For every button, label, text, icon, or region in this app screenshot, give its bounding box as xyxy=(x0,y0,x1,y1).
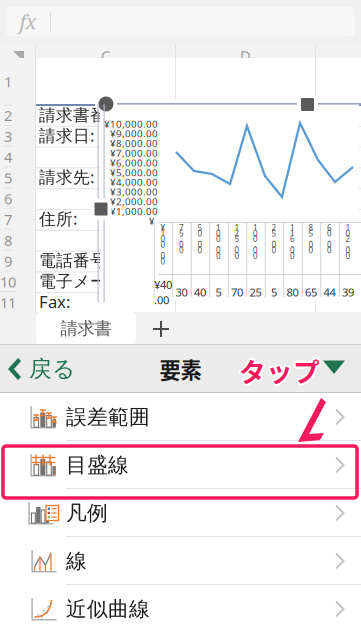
staticText: 6 xyxy=(290,234,295,244)
staticText: 8 xyxy=(4,230,12,250)
staticText: 0 xyxy=(197,239,202,250)
staticText: . xyxy=(310,234,312,244)
staticText: 凡例 xyxy=(66,500,108,526)
staticText: ¥9,000.00 xyxy=(110,127,158,140)
staticText: 40 xyxy=(194,285,206,300)
staticText: 1 xyxy=(345,222,350,233)
staticText: 0 xyxy=(253,250,258,261)
staticText: ¥4,000.00 xyxy=(110,175,158,189)
staticText: 65 xyxy=(305,285,317,300)
staticText: 0 xyxy=(253,245,258,256)
staticText: 2 xyxy=(345,234,350,244)
staticText: ¥2,000.00 xyxy=(110,195,158,208)
staticText: 9 xyxy=(4,251,12,271)
button[interactable]: 近似曲線 xyxy=(0,585,361,633)
staticText: タップ xyxy=(241,353,322,391)
staticText: . xyxy=(347,239,349,250)
staticText: 請求先: xyxy=(39,165,94,188)
staticText: 5 xyxy=(4,168,12,188)
button[interactable]: 線 xyxy=(0,537,361,585)
staticText: 0 xyxy=(234,250,239,261)
staticText: 5 xyxy=(197,222,202,233)
staticText: . xyxy=(236,239,238,250)
staticText: 5 xyxy=(271,285,277,300)
staticText: 2 xyxy=(234,228,239,239)
staticText: 1 xyxy=(253,222,258,233)
staticText: 11 xyxy=(0,293,16,313)
button[interactable]: 誤差範囲 xyxy=(0,393,361,441)
staticText: 4 xyxy=(4,147,12,167)
button[interactable]: 閉じる xyxy=(322,345,348,393)
staticText: 30 xyxy=(175,285,187,300)
staticText: 請求日: xyxy=(39,124,94,146)
staticText: タップ xyxy=(239,351,320,390)
staticText: 0 xyxy=(290,245,295,256)
staticText: 2 xyxy=(4,105,12,125)
staticText: タップ xyxy=(241,349,322,388)
staticText: 1 xyxy=(216,222,221,233)
staticText: . xyxy=(180,234,182,244)
staticText: 1 xyxy=(4,71,12,91)
staticText: 6 xyxy=(327,222,332,233)
staticText: 1 xyxy=(160,228,165,239)
staticText: D xyxy=(240,45,251,65)
staticText: 0 xyxy=(160,234,165,244)
staticText: 0 xyxy=(197,228,202,239)
staticText: 5 xyxy=(234,234,239,244)
staticText: 0 xyxy=(345,245,350,256)
staticText: ¥8,000.00 xyxy=(110,137,158,150)
staticText: 39 xyxy=(342,285,354,300)
staticText: 0 xyxy=(327,228,332,239)
staticText: 請求書番号: xyxy=(39,103,128,126)
staticText: 線 xyxy=(66,548,87,574)
button[interactable]: 戻る xyxy=(0,345,110,393)
button[interactable]: 請求書 xyxy=(36,312,136,345)
staticText: . xyxy=(273,234,275,244)
staticText: 0 xyxy=(216,234,221,244)
staticText: 0 xyxy=(234,245,239,256)
staticText: . xyxy=(199,234,201,244)
staticText: 0 xyxy=(345,250,350,261)
staticText: 0 xyxy=(308,245,313,256)
staticText: 目盛線 xyxy=(66,452,129,478)
staticText: タップ xyxy=(239,353,320,392)
staticText: 0 xyxy=(160,256,165,267)
staticText: 0 xyxy=(216,250,221,261)
staticText: . xyxy=(254,239,256,250)
staticText: 0 xyxy=(179,245,184,256)
staticText: タップ xyxy=(237,353,318,391)
staticText: 近似曲線 xyxy=(66,596,150,622)
staticText: ¥6,000.00 xyxy=(110,156,158,169)
staticText: 1 xyxy=(234,222,239,233)
staticText: 2 xyxy=(271,222,276,233)
staticText: 3 xyxy=(4,126,12,146)
staticText: 5 xyxy=(308,228,313,239)
staticText: ¥- xyxy=(149,214,158,227)
staticText: 0 xyxy=(308,239,313,250)
staticText: 6 xyxy=(4,189,12,209)
staticText: ¥ xyxy=(160,222,165,233)
staticText: 要素 xyxy=(159,354,201,384)
staticText: 0 xyxy=(327,245,332,256)
staticText: 5 xyxy=(179,228,184,239)
button[interactable]: 目盛線 xyxy=(0,441,361,489)
staticText: 誤差範囲 xyxy=(66,404,150,430)
button[interactable]: 新しいシート xyxy=(136,312,186,345)
staticText: 0 xyxy=(290,250,295,261)
staticText: . xyxy=(328,234,330,244)
staticText: 0 xyxy=(216,245,221,256)
staticText: ¥1,000.00 xyxy=(110,204,158,218)
staticText: 25 xyxy=(249,285,261,300)
staticText: 5 xyxy=(215,285,221,300)
staticText: 10 xyxy=(0,272,16,292)
staticText: 0 xyxy=(179,239,184,250)
button[interactable]: 凡例 xyxy=(0,489,361,537)
staticText: 戻る xyxy=(29,355,75,383)
staticText: 0 xyxy=(216,228,221,239)
staticText: C xyxy=(101,45,110,65)
staticText: . xyxy=(217,239,219,250)
staticText: ¥40.00 xyxy=(154,277,172,307)
staticText: 請求書 xyxy=(60,318,111,339)
staticText: タップ xyxy=(239,349,320,387)
staticText: . xyxy=(162,245,164,256)
